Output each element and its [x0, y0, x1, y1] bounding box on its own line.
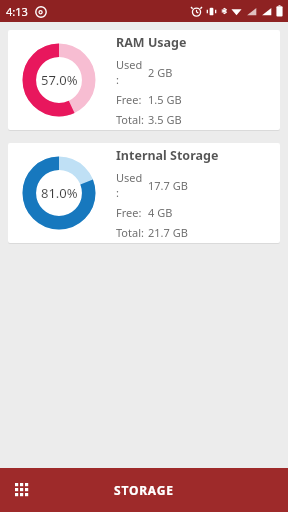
staticText: Free: — [116, 92, 142, 107]
staticText: 17.7 GB — [148, 178, 188, 193]
staticText: 4 GB — [148, 205, 173, 220]
staticText: Used: — [116, 57, 145, 87]
button[interactable]: Apps — [0, 468, 44, 512]
staticText: 3.5 GB — [148, 112, 182, 127]
staticText: Used: — [116, 170, 145, 200]
button[interactable]: 81.0% — [8, 143, 280, 243]
staticText: 81.0% — [41, 184, 78, 202]
staticText: 1.5 GB — [148, 92, 182, 107]
staticText: 2 GB — [148, 65, 173, 80]
staticText: RAM Usage — [116, 34, 187, 51]
staticText: 21.7 GB — [148, 225, 188, 240]
staticText: 57.0% — [41, 71, 78, 89]
staticText: Free: — [116, 205, 142, 220]
staticText: Internal Storage — [116, 147, 219, 164]
button[interactable]: 57.0% — [8, 30, 280, 130]
staticText: 4:13 — [6, 4, 28, 19]
staticText: STORAGE — [114, 482, 174, 498]
staticText: Total: — [116, 112, 144, 127]
staticText: Total: — [116, 225, 144, 240]
button[interactable]: STORAGE — [96, 474, 192, 506]
